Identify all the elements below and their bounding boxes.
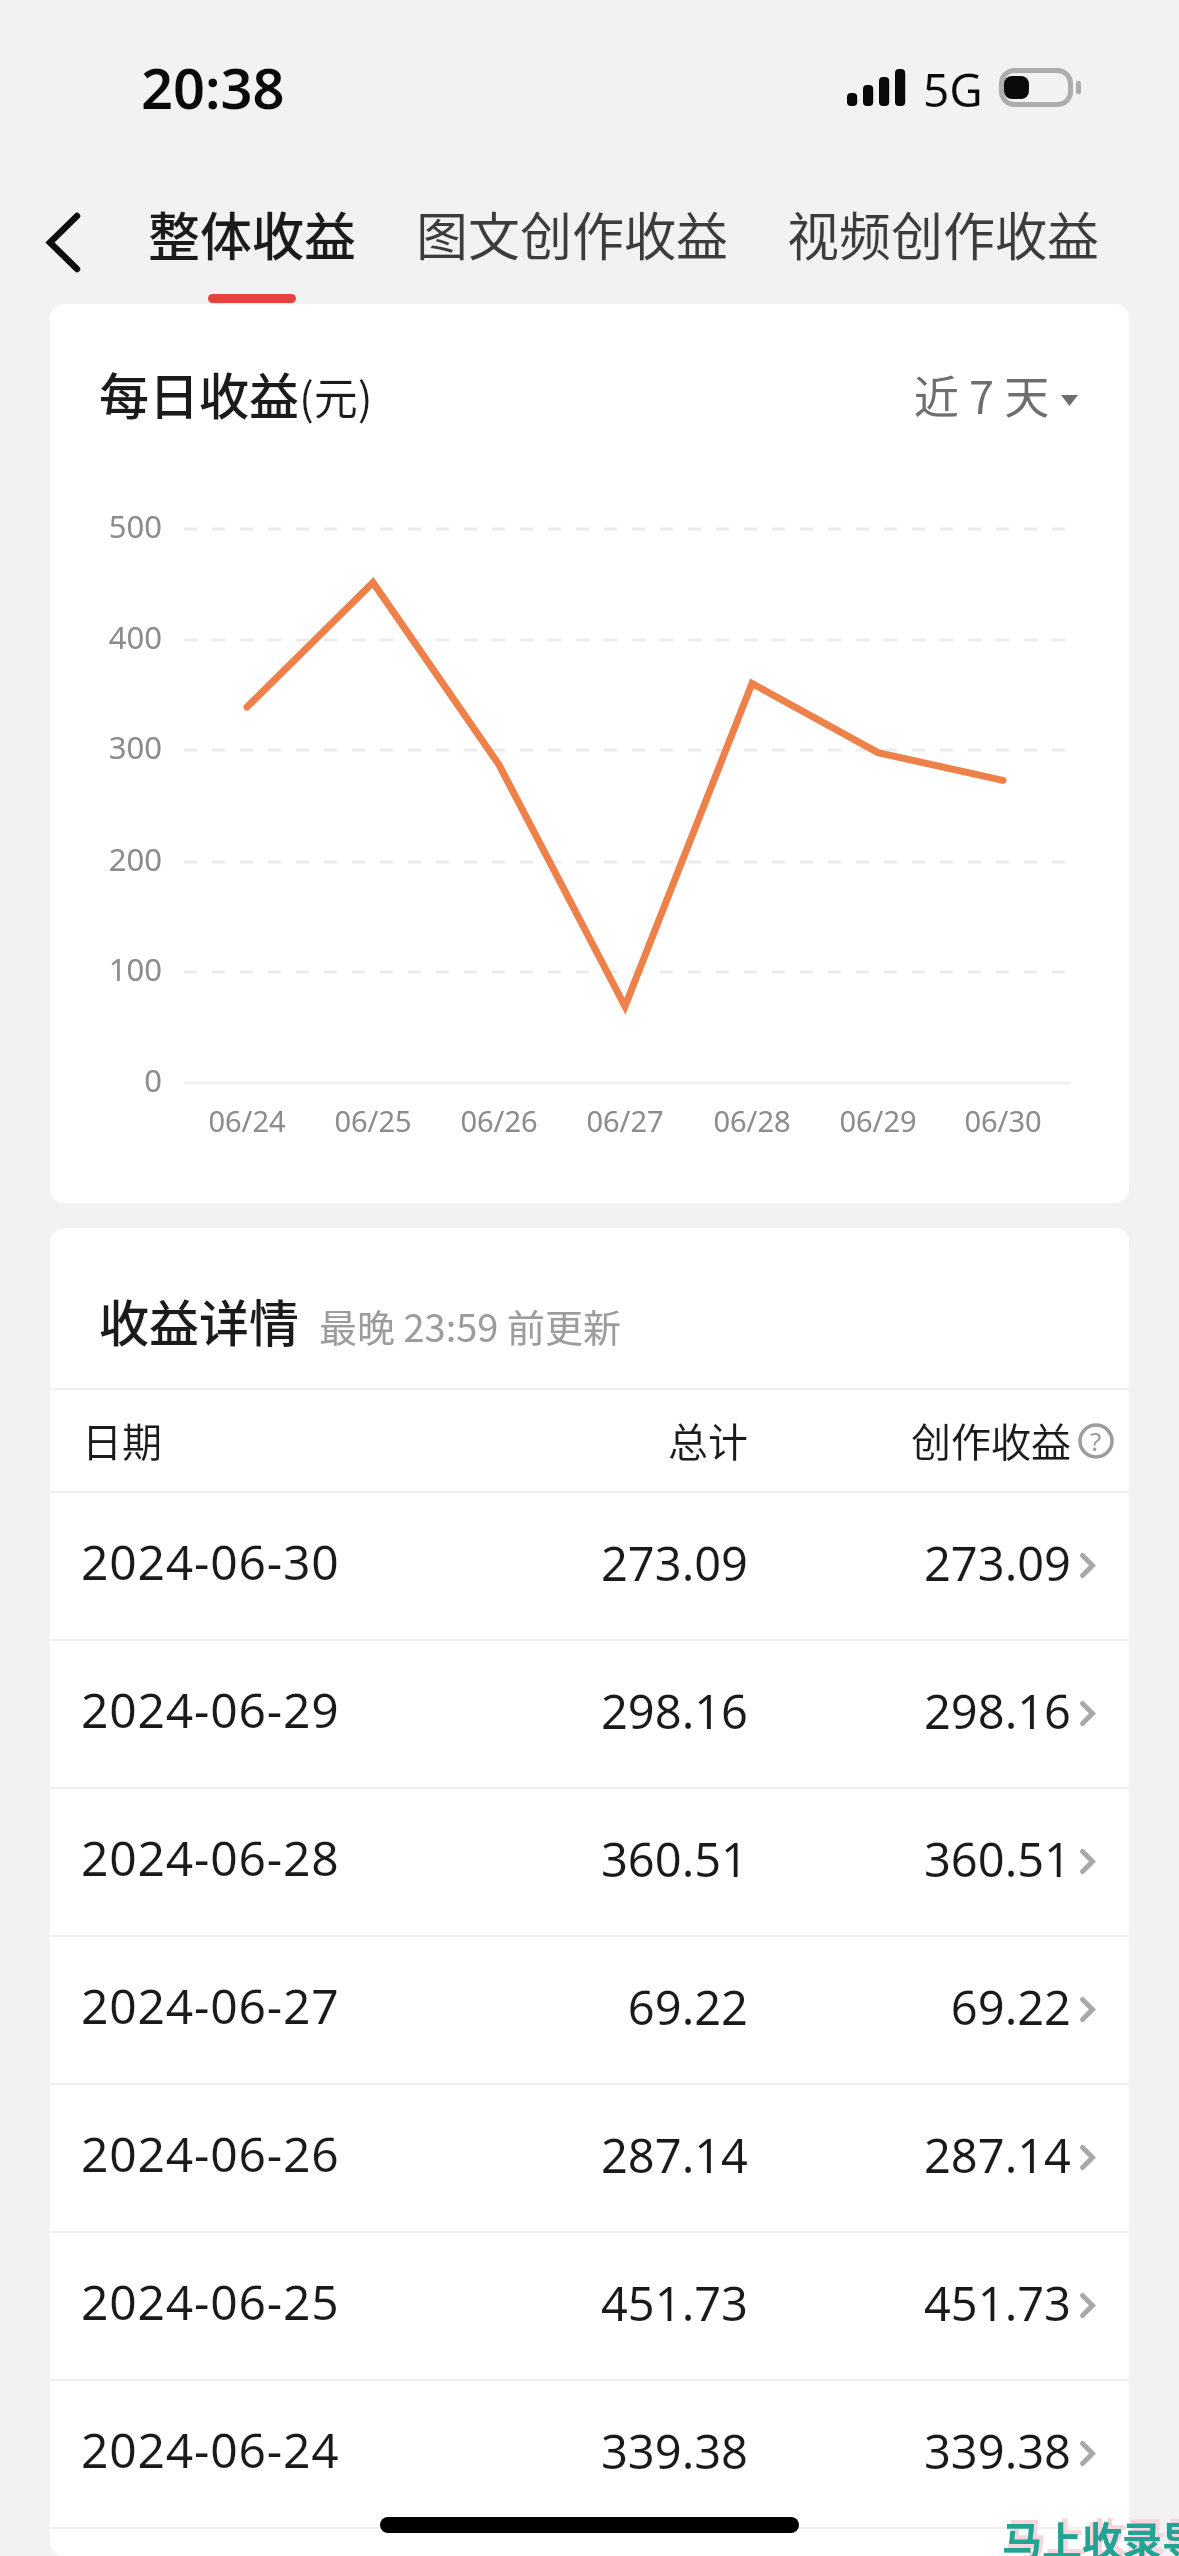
button[interactable]: 2024-06-28	[50, 1789, 1129, 1935]
staticText: 100	[60, 948, 162, 990]
staticText: 06/24	[177, 1101, 317, 1140]
staticText: 2024-06-30	[81, 1529, 340, 1594]
staticText: 298.16	[771, 1679, 1071, 1743]
staticText: 整体收益	[148, 196, 357, 271]
button[interactable]: 2024-06-24	[50, 2381, 1129, 2527]
staticText: 日期	[82, 1411, 162, 1469]
staticText: 06/27	[555, 1101, 695, 1140]
staticText: 273.09	[448, 1531, 748, 1595]
staticText: 视频创作收益	[787, 196, 1100, 271]
button[interactable]: Help about creator earnings	[1078, 1423, 1114, 1459]
button[interactable]: Back	[13, 192, 113, 292]
staticText: 图文创作收益	[416, 196, 729, 271]
button[interactable]: 图文创作收益	[413, 196, 732, 271]
staticText: 总计	[448, 1411, 748, 1469]
staticText: 06/29	[808, 1101, 948, 1140]
staticText: ?	[1090, 1423, 1102, 1458]
staticText: 06/25	[303, 1101, 443, 1140]
staticText: 500	[60, 505, 162, 547]
staticText: 近 7 天	[914, 362, 1050, 427]
staticText: 马上收录导航	[1002, 2510, 1179, 2556]
staticText: 20:38	[141, 49, 285, 125]
staticText: 273.09	[771, 1531, 1071, 1595]
staticText: 287.14	[448, 2123, 748, 2187]
staticText: 360.51	[771, 1827, 1071, 1891]
staticText: 06/28	[682, 1101, 822, 1140]
staticText: 06/26	[429, 1101, 569, 1140]
staticText: 收益详情	[99, 1284, 299, 1356]
button[interactable]: 视频创作收益	[784, 196, 1103, 271]
staticText: 69.22	[771, 1975, 1071, 2039]
staticText: 2024-06-25	[81, 2269, 340, 2334]
staticText: 451.73	[448, 2271, 748, 2335]
button[interactable]: 2024-06-26	[50, 2085, 1129, 2231]
staticText: 马上收录导航	[1006, 2506, 1179, 2556]
staticText: 400	[60, 616, 162, 658]
staticText: 451.73	[771, 2271, 1071, 2335]
staticText: 每日收益	[99, 357, 299, 429]
button[interactable]: 2024-06-29	[50, 1641, 1129, 1787]
button[interactable]: 2024-06-27	[50, 1937, 1129, 2083]
staticText: 2024-06-26	[81, 2121, 340, 2186]
staticText: 300	[60, 726, 162, 768]
staticText: 2024-06-24	[81, 2417, 340, 2482]
button[interactable]: 整体收益	[145, 196, 360, 271]
staticText: 339.38	[448, 2419, 748, 2483]
staticText: 287.14	[771, 2123, 1071, 2187]
button[interactable]: 近 7 天	[908, 356, 1084, 433]
staticText: 2024-06-27	[81, 1973, 340, 2038]
button[interactable]: 2024-06-30	[50, 1493, 1129, 1639]
staticText: 2024-06-29	[81, 1677, 340, 1742]
staticText: 5G	[923, 58, 983, 121]
staticText: 360.51	[448, 1827, 748, 1891]
staticText: 200	[60, 838, 162, 880]
staticText: 298.16	[448, 1679, 748, 1743]
staticText: 创作收益	[771, 1411, 1071, 1469]
button[interactable]: 2024-06-25	[50, 2233, 1129, 2379]
staticText: 2024-06-28	[81, 1825, 340, 1890]
staticText: 0	[60, 1059, 162, 1101]
staticText: 69.22	[448, 1975, 748, 2039]
staticText: 339.38	[771, 2419, 1071, 2483]
staticText: 最晚 23:59 前更新	[319, 1298, 621, 1353]
staticText: 06/30	[933, 1101, 1073, 1140]
staticText: (元)	[299, 364, 373, 428]
